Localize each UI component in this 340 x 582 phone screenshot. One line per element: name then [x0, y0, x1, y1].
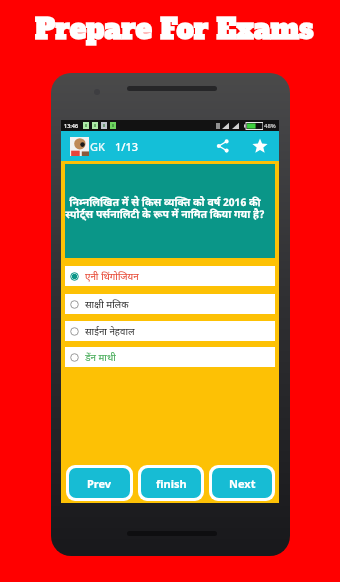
button[interactable]: साईना नेहवाल — [65, 321, 275, 341]
staticText: साईना नेहवाल — [85, 325, 135, 338]
button[interactable]: Prev — [69, 468, 130, 498]
staticText: डेंन माथी — [85, 351, 116, 364]
staticText: finish — [156, 476, 187, 491]
button[interactable]: एनी थिंगोजियन — [65, 266, 275, 286]
button[interactable]: साक्षी मलिक — [65, 294, 275, 314]
staticText: GK — [90, 139, 105, 154]
button[interactable]: Share — [213, 136, 233, 156]
staticText: Prev — [87, 476, 112, 491]
staticText: साक्षी मलिक — [85, 298, 129, 311]
button[interactable]: finish — [141, 468, 201, 498]
staticText: Prepare For Exams — [35, 11, 314, 49]
button[interactable]: Next — [212, 468, 272, 498]
button[interactable]: डेंन माथी — [65, 347, 275, 367]
staticText: Next — [229, 476, 256, 491]
button[interactable]: Favorite — [250, 136, 270, 156]
staticText: निम्नलिखित में से किस व्यक्ति को वर्ष 20… — [65, 195, 265, 221]
staticText: 48% — [264, 122, 276, 130]
staticText: एनी थिंगोजियन — [85, 270, 139, 283]
staticText: 1/13 — [115, 139, 139, 154]
staticText: 13:46 — [64, 122, 79, 129]
